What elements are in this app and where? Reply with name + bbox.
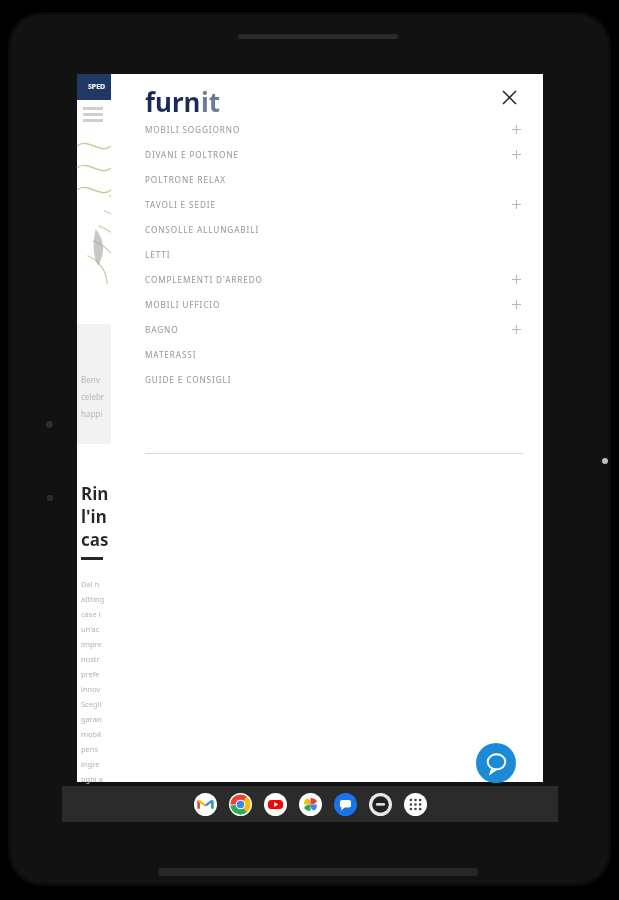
staticText: GUIDE E CONSIGLI [145, 374, 232, 385]
button[interactable]: MATERASSI [111, 342, 543, 367]
button[interactable]: COMPLEMENTI D'ARREDO [111, 267, 543, 292]
staticText: MATERASSI [145, 349, 197, 360]
button[interactable]: CONSOLLE ALLUNGABILI [111, 217, 543, 242]
staticText: POLTRONE RELAX [145, 174, 226, 185]
staticText: Scegli [81, 699, 102, 709]
staticText: innov [81, 684, 101, 694]
staticText: impre [81, 639, 102, 649]
staticText: LETTI [145, 249, 171, 260]
button[interactable]: MOBILI SOGGIORNO [111, 117, 543, 142]
staticText: ogni a [81, 774, 103, 784]
button[interactable]: MOBILI UFFICIO [111, 292, 543, 317]
staticText: SPED [88, 82, 106, 92]
staticText: it [201, 84, 221, 119]
staticText: DIVANI E POLTRONE [145, 149, 239, 160]
button[interactable]: LETTI [111, 242, 543, 267]
staticText: furn [145, 84, 201, 119]
button[interactable]: furn [145, 84, 221, 119]
staticText: Dal n [81, 579, 100, 589]
button[interactable]: Messages [333, 792, 358, 817]
staticText: l'in [81, 505, 107, 528]
button[interactable]: POLTRONE RELAX [111, 167, 543, 192]
staticText: Rin [81, 482, 109, 505]
staticText: mobil [81, 729, 102, 739]
button[interactable]: Open menu [83, 107, 107, 123]
staticText: TAVOLI E SEDIE [145, 199, 216, 210]
staticText: celebr [81, 391, 105, 402]
button[interactable]: GUIDE E CONSIGLI [111, 367, 543, 392]
staticText: happi [81, 408, 103, 419]
staticText: prefe [81, 669, 100, 679]
staticText: cas [81, 528, 109, 551]
button[interactable]: BAGNO [111, 317, 543, 342]
button[interactable]: DIVANI E POLTRONE [111, 142, 543, 167]
button[interactable]: Gmail [193, 792, 218, 817]
button[interactable]: Photos [298, 792, 323, 817]
button[interactable]: TAVOLI E SEDIE [111, 192, 543, 217]
button[interactable]: All apps [403, 792, 428, 817]
staticText: un'ac [81, 624, 100, 634]
staticText: MOBILI UFFICIO [145, 299, 221, 310]
button[interactable]: Close menu [492, 80, 526, 114]
staticText: nostr [81, 654, 100, 664]
staticText: COMPLEMENTI D'ARREDO [145, 274, 263, 285]
staticText: aItting [81, 594, 105, 604]
staticText: Benv [81, 374, 100, 385]
staticText: ingre [81, 759, 100, 769]
staticText: MOBILI SOGGIORNO [145, 124, 241, 135]
button[interactable]: Chat [476, 743, 516, 783]
staticText: BAGNO [145, 324, 179, 335]
staticText: case i [81, 609, 101, 619]
button[interactable]: YouTube [263, 792, 288, 817]
staticText: CONSOLLE ALLUNGABILI [145, 224, 260, 235]
button[interactable]: Chrome [228, 792, 253, 817]
staticText: pens [81, 744, 99, 754]
staticText: garan [81, 714, 102, 724]
button[interactable]: Recent app [368, 792, 393, 817]
